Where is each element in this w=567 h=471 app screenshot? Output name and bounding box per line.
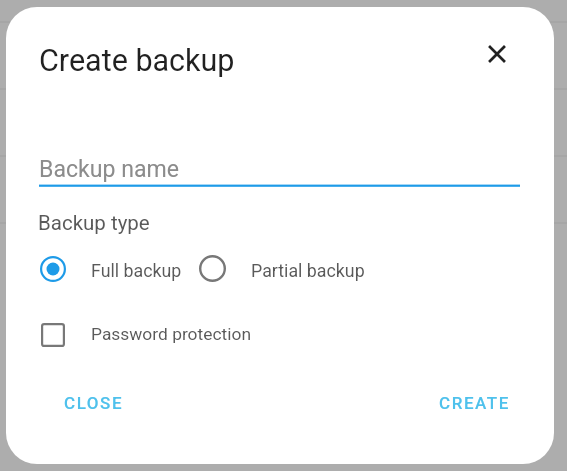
staticText: Backup type <box>38 211 150 235</box>
staticText: Create backup <box>39 43 235 79</box>
button[interactable]: Close <box>471 28 523 80</box>
staticText: Backup name <box>39 156 179 183</box>
button[interactable]: CREATE <box>420 380 528 425</box>
button[interactable]: Full backup <box>28 245 178 292</box>
button[interactable]: Partial backup <box>191 245 376 292</box>
staticText: CREATE <box>439 393 510 413</box>
staticText: Password protection <box>91 324 251 344</box>
button[interactable]: CLOSE <box>45 380 143 425</box>
staticText: Partial backup <box>251 260 365 281</box>
staticText: CLOSE <box>64 393 124 413</box>
staticText: Full backup <box>91 260 182 281</box>
button[interactable]: Password protection <box>34 311 269 358</box>
